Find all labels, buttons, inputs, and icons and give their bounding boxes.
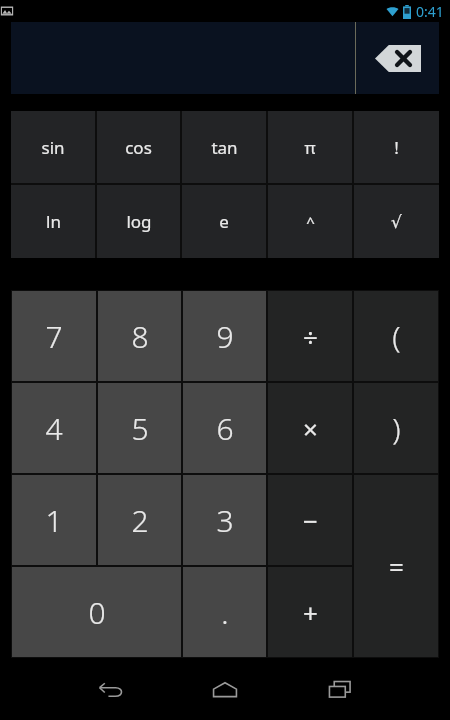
staticText: ln	[46, 210, 61, 233]
staticText: )	[392, 408, 401, 449]
staticText: 4	[45, 408, 63, 449]
button[interactable]: 9	[183, 291, 266, 381]
button[interactable]: e	[182, 185, 266, 258]
staticText: 9	[216, 316, 234, 357]
button[interactable]: Back	[87, 666, 133, 712]
staticText: log	[126, 210, 152, 233]
staticText: 2	[131, 500, 149, 541]
button[interactable]: 8	[98, 291, 181, 381]
button[interactable]: 2	[98, 475, 181, 565]
staticText: +	[303, 595, 318, 630]
staticText: cos	[125, 136, 152, 159]
staticText: 5	[131, 408, 149, 449]
staticText: 7	[45, 316, 63, 357]
staticText: sin	[41, 136, 65, 159]
button[interactable]: (	[354, 291, 438, 381]
button[interactable]: )	[354, 383, 438, 473]
staticText: ^	[306, 212, 315, 232]
button[interactable]: +	[268, 567, 352, 657]
button[interactable]: ^	[268, 185, 352, 258]
staticText: tan	[211, 136, 238, 159]
button[interactable]: 5	[98, 383, 181, 473]
button[interactable]: =	[354, 475, 438, 657]
staticText: e	[219, 210, 229, 233]
button[interactable]: tan	[182, 111, 266, 183]
button[interactable]: sin	[11, 111, 95, 183]
button[interactable]: ln	[11, 185, 95, 258]
button[interactable]: Delete	[357, 22, 439, 94]
button[interactable]: π	[268, 111, 352, 183]
staticText: ÷	[303, 319, 318, 354]
staticText: √	[391, 212, 402, 232]
staticText: =	[389, 549, 404, 584]
button[interactable]: log	[97, 185, 180, 258]
button[interactable]: 7	[12, 291, 96, 381]
button[interactable]: 3	[183, 475, 266, 565]
button[interactable]: −	[268, 475, 352, 565]
staticText: 8	[131, 316, 149, 357]
button[interactable]: Recents	[317, 666, 363, 712]
button[interactable]: 4	[12, 383, 96, 473]
button[interactable]: 1	[12, 475, 96, 565]
staticText: ×	[303, 411, 318, 446]
button[interactable]: 6	[183, 383, 266, 473]
button[interactable]: 0	[12, 567, 181, 657]
staticText: 1	[45, 500, 63, 541]
staticText: π	[304, 136, 316, 159]
staticText: 6	[216, 408, 234, 449]
staticText: 0	[88, 592, 106, 633]
button[interactable]: .	[183, 567, 266, 657]
staticText: .	[221, 592, 229, 633]
button[interactable]: Home	[202, 666, 248, 712]
staticText: (	[392, 316, 401, 357]
button[interactable]: cos	[97, 111, 180, 183]
button[interactable]: √	[354, 185, 439, 258]
button[interactable]: ÷	[268, 291, 352, 381]
staticText: 0:41	[416, 2, 444, 21]
staticText: −	[303, 503, 318, 538]
button[interactable]: ×	[268, 383, 352, 473]
staticText: !	[394, 136, 399, 159]
button[interactable]: !	[354, 111, 439, 183]
staticText: 3	[216, 500, 234, 541]
